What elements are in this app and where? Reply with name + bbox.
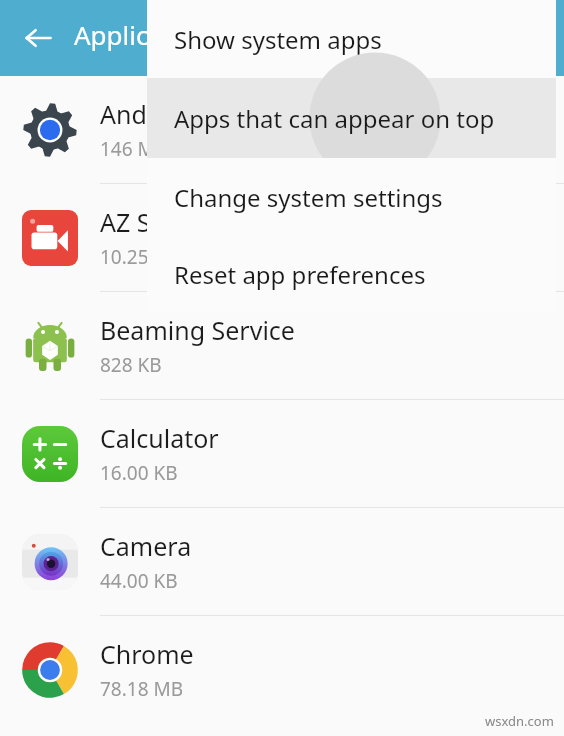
staticText: Apps that can appear on top — [174, 102, 495, 135]
button[interactable]: Apps that can appear on top — [147, 78, 556, 158]
staticText: 828 KB — [100, 352, 162, 378]
staticText: Change system settings — [174, 181, 443, 214]
staticText: Beaming Service — [100, 313, 295, 347]
button[interactable]: Reset app preferences — [147, 236, 556, 313]
staticText: Chrome — [100, 637, 194, 671]
staticText: 16.00 KB — [100, 460, 178, 486]
button[interactable]: Beaming Service — [0, 292, 564, 399]
staticText: Show system apps — [174, 23, 382, 56]
staticText: Camera — [100, 529, 192, 563]
staticText: Calculator — [100, 421, 219, 455]
staticText: 44.00 KB — [100, 568, 178, 594]
staticText: Reset app preferences — [174, 258, 426, 291]
button[interactable]: AZ Screen Recorder — [0, 184, 564, 291]
button[interactable]: Show system apps — [147, 0, 556, 78]
staticText: 146 MB — [100, 136, 168, 162]
staticText: 78.18 MB — [100, 676, 184, 702]
button[interactable]: Android System — [0, 76, 564, 183]
button[interactable]: Back — [14, 14, 62, 62]
staticText: wsxdn.com — [485, 712, 554, 730]
button[interactable]: Calculator — [0, 400, 564, 507]
staticText: Applications — [74, 17, 224, 52]
staticText: Android System — [100, 97, 286, 131]
button[interactable]: Camera — [0, 508, 564, 615]
button[interactable]: Change system settings — [147, 158, 556, 236]
button[interactable]: Chrome — [0, 616, 564, 723]
staticText: AZ Screen Recorder — [100, 205, 329, 239]
staticText: 10.25 MB — [100, 244, 184, 270]
